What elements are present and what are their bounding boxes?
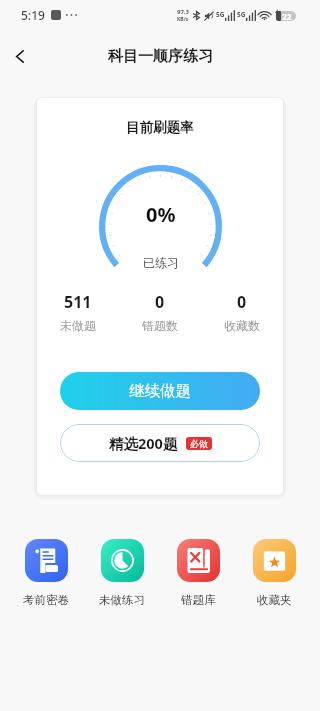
staticText: 错题库 bbox=[181, 593, 216, 607]
button[interactable]: 考前密卷 bbox=[8, 539, 84, 607]
staticText: 已练习 bbox=[143, 255, 179, 270]
button[interactable]: Back bbox=[0, 38, 36, 74]
staticText: 22 bbox=[282, 11, 292, 21]
staticText: 5:19 bbox=[21, 7, 45, 23]
staticText: 收藏夹 bbox=[257, 593, 292, 607]
button[interactable]: 精选200题 bbox=[60, 424, 260, 462]
staticText: 0 bbox=[237, 291, 247, 313]
button[interactable]: 未做练习 bbox=[84, 539, 160, 607]
staticText: 0 bbox=[155, 291, 165, 313]
staticText: 5G bbox=[237, 10, 246, 19]
button[interactable]: 收藏夹 bbox=[236, 539, 312, 607]
staticText: 收藏数 bbox=[224, 318, 260, 333]
staticText: 5G bbox=[216, 10, 225, 19]
staticText: 未做题 bbox=[60, 318, 96, 333]
staticText: 0% bbox=[146, 201, 176, 228]
staticText: 511 bbox=[64, 291, 92, 313]
staticText: 错题数 bbox=[142, 318, 178, 333]
button[interactable]: 错题库 bbox=[160, 539, 236, 607]
staticText: 考前密卷 bbox=[23, 593, 69, 607]
staticText: 精选200题 bbox=[109, 433, 178, 453]
staticText: 科目一顺序练习 bbox=[108, 47, 213, 66]
button[interactable]: 继续做题 bbox=[60, 372, 260, 410]
staticText: 必做 bbox=[190, 438, 208, 449]
staticText: 未做练习 bbox=[99, 593, 145, 607]
staticText: 97.3 bbox=[177, 8, 189, 16]
staticText: KB/s bbox=[177, 16, 189, 23]
staticText: 目前刷题率 bbox=[126, 119, 194, 136]
staticText: 继续做题 bbox=[129, 381, 191, 401]
